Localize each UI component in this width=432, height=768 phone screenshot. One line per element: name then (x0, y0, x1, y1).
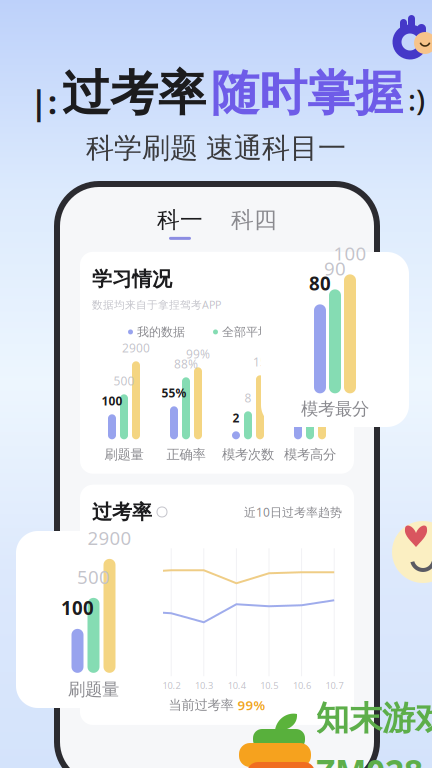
staticText: 100 (101, 393, 122, 409)
staticText: 近10日过考率趋势 (244, 504, 342, 520)
staticText: 0% (100, 679, 113, 692)
staticText: 100 (61, 595, 94, 620)
staticText: 2900 (122, 340, 150, 356)
staticText: 10.2 (162, 679, 180, 692)
staticText: 随时掌握 (211, 64, 403, 123)
staticText: 模考高分 (284, 446, 336, 463)
staticText: 科一 (157, 206, 203, 234)
staticText: 88% (174, 356, 198, 372)
staticText: 15 (253, 354, 267, 370)
staticText: 99% (186, 346, 210, 362)
staticText: 我的数据 (137, 325, 185, 339)
staticText: 过考率 (92, 500, 152, 524)
staticText: 科四 (231, 206, 277, 234)
staticText: |: (30, 80, 57, 123)
staticText: 数据均来自于拿捏驾考APP (92, 297, 221, 312)
staticText: 刷题量 (104, 446, 143, 463)
button[interactable]: 科一 (157, 206, 203, 240)
staticText: 2 (232, 410, 239, 426)
staticText: 80 (309, 271, 331, 296)
staticText: 科学刷题 速通科目一 (86, 131, 346, 165)
staticText: 模考最分 (301, 398, 369, 420)
staticText: 99% (237, 696, 265, 714)
staticText: 知末游戏网 (316, 698, 432, 739)
staticText: 最高 (100, 530, 118, 542)
staticText: 过考率 (62, 64, 206, 123)
staticText: 90 (324, 256, 346, 281)
staticText: 当前过考率 (168, 697, 233, 713)
staticText: 10.3 (195, 679, 213, 692)
staticText: 8 (244, 390, 251, 406)
staticText: 10.5 (260, 679, 278, 692)
staticText: ZM028.CN (316, 749, 432, 768)
staticText: 2900 (87, 525, 131, 550)
staticText: 全部平均 (222, 325, 270, 339)
staticText: 10.4 (228, 679, 246, 692)
staticText: 10.6 (293, 679, 311, 692)
staticText: 10.7 (325, 679, 343, 692)
staticText: 学习情况 (92, 267, 172, 291)
staticText: 正确率 (166, 446, 205, 463)
staticText: 刷题量 (68, 679, 119, 700)
staticText: 100 (311, 348, 332, 364)
staticText: 500 (113, 373, 134, 389)
staticText: 55% (161, 385, 186, 401)
staticText: 500 (77, 564, 110, 589)
staticText: 100 (333, 241, 366, 266)
staticText: 模考次数 (222, 446, 274, 463)
staticText: 90 (303, 366, 317, 382)
staticText: :) (408, 80, 425, 119)
button[interactable]: 科四 (231, 206, 277, 240)
